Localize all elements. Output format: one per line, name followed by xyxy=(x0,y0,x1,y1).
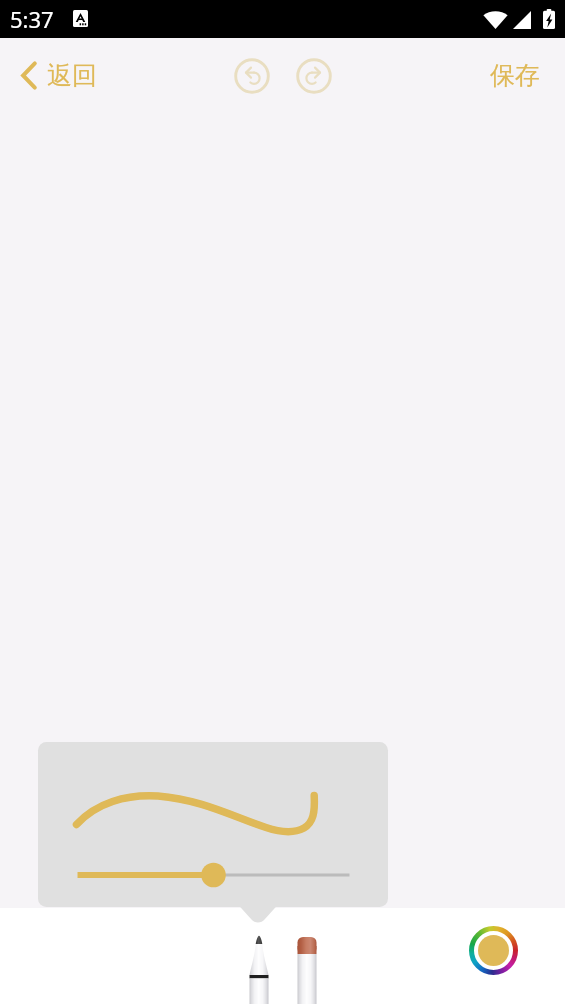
button[interactable]: Brush size xyxy=(68,857,358,893)
button[interactable]: Drawing canvas xyxy=(0,0,565,908)
button[interactable]: Undo xyxy=(229,53,275,99)
button[interactable]: Eraser xyxy=(284,908,330,1004)
staticText: 返回 xyxy=(47,60,97,91)
staticText: 5:37 xyxy=(10,4,54,34)
staticText: 保存 xyxy=(490,60,540,91)
button[interactable]: 返回 xyxy=(14,52,105,99)
button[interactable]: Redo xyxy=(291,53,337,99)
button[interactable]: Pen xyxy=(236,908,282,1004)
button[interactable]: Color picker xyxy=(469,926,518,975)
button[interactable]: 保存 xyxy=(483,51,547,100)
